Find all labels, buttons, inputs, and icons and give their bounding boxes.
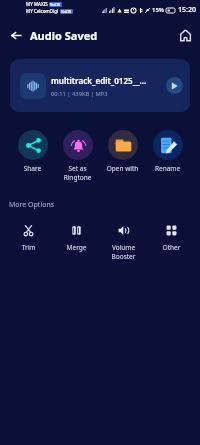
staticText: Set as Ringtone: [55, 164, 100, 182]
staticText: Other: [149, 243, 194, 252]
staticText: Volume Booster: [101, 243, 146, 261]
staticText: 00:11 | 439KB | MP3: [51, 90, 108, 98]
button[interactable]: Volume Booster: [101, 224, 146, 261]
button[interactable]: Set as Ringtone: [55, 130, 100, 182]
staticText: VoLTE: [61, 9, 72, 14]
staticText: MY CelcomDigi: [26, 8, 59, 14]
button[interactable]: Other: [149, 224, 194, 252]
button[interactable]: Share: [10, 130, 55, 173]
button[interactable]: Rename: [145, 130, 190, 173]
staticText: More Options: [9, 200, 55, 210]
staticText: MY MAXIS: [26, 1, 48, 7]
staticText: Trim: [6, 243, 51, 252]
staticText: 15:20: [178, 5, 196, 15]
staticText: Rename: [145, 164, 190, 173]
button[interactable]: Home: [175, 25, 195, 45]
staticText: Audio Saved: [30, 28, 98, 43]
staticText: VoLTE: [50, 2, 61, 7]
button[interactable]: Merge: [54, 224, 99, 252]
staticText: multitrack_edit_0125__…: [51, 75, 147, 86]
button[interactable]: Back: [6, 25, 26, 45]
staticText: Open with: [100, 164, 145, 173]
button[interactable]: Trim: [6, 224, 51, 252]
button[interactable]: multitrack_edit_0125__…: [10, 59, 190, 112]
button[interactable]: Play: [166, 77, 183, 94]
staticText: Merge: [54, 243, 99, 252]
button[interactable]: Open with: [100, 130, 145, 173]
staticText: Share: [10, 164, 55, 173]
staticText: 15%: [152, 6, 164, 14]
